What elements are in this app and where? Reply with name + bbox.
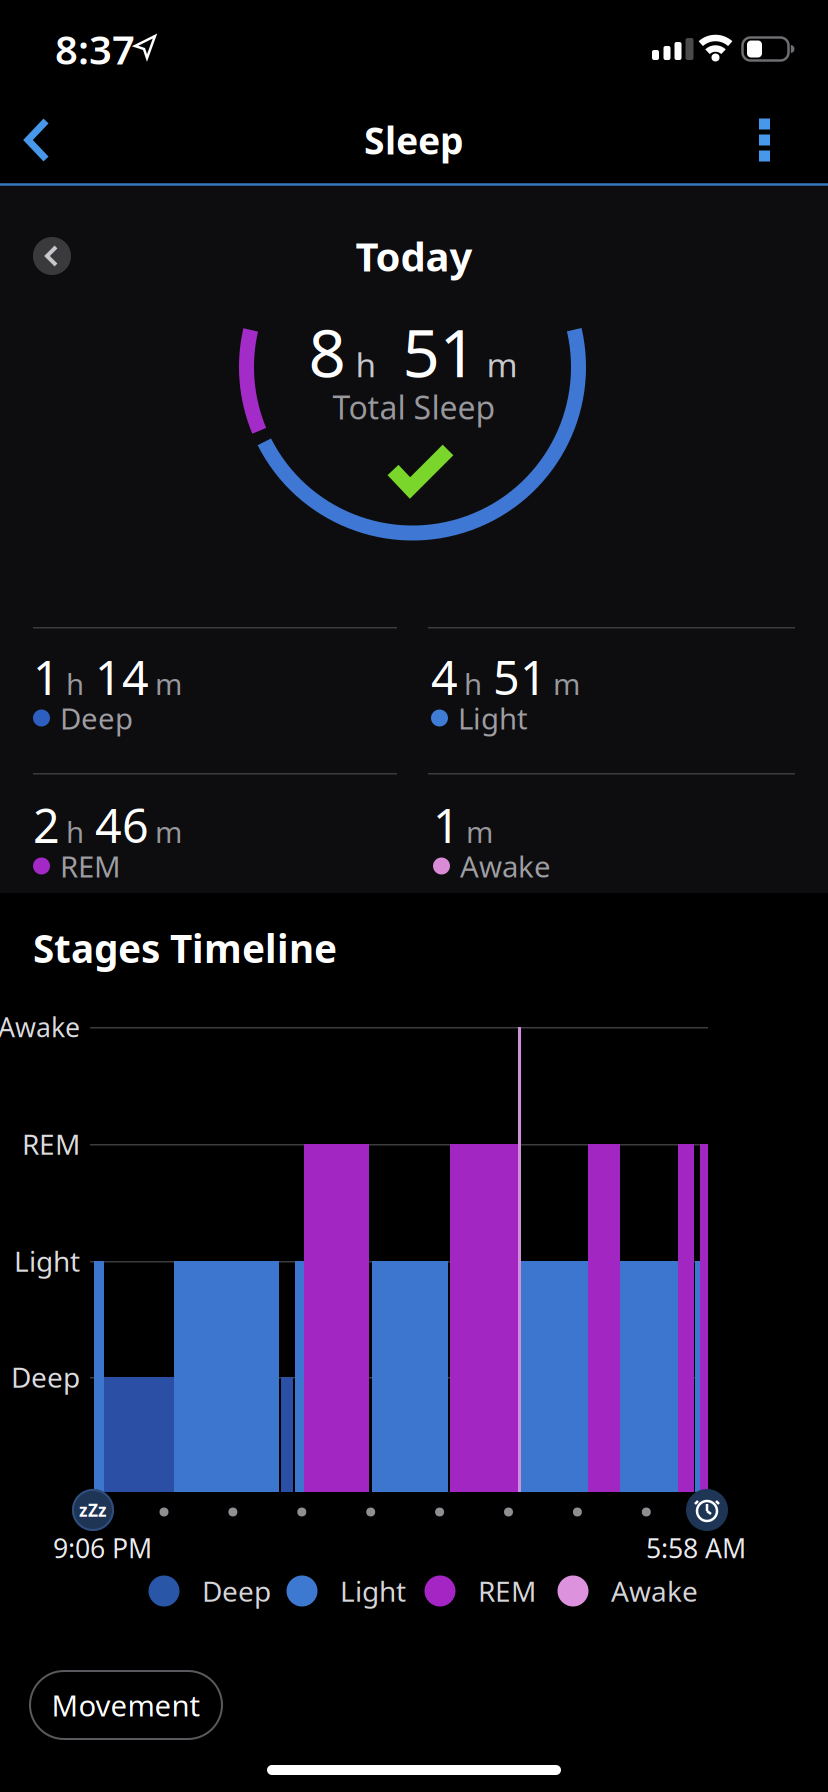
staticText: 1: [433, 794, 460, 856]
button[interactable]: [4, 96, 84, 184]
staticText: m: [466, 812, 493, 851]
staticText: Light: [340, 1572, 406, 1610]
staticText: 9:06 PM: [53, 1530, 152, 1566]
staticText: m: [155, 812, 182, 851]
staticText: 2: [33, 794, 60, 856]
staticText: h: [66, 664, 84, 703]
staticText: Awake: [460, 846, 551, 885]
staticText: Awake: [0, 1009, 80, 1045]
staticText: 8: [308, 309, 345, 395]
staticText: 51: [493, 646, 547, 708]
staticText: m: [155, 664, 182, 703]
staticText: Sleep: [364, 115, 464, 165]
button[interactable]: [728, 113, 800, 166]
staticText: 1: [33, 646, 60, 708]
staticText: Deep: [60, 698, 133, 737]
staticText: h: [464, 664, 482, 703]
staticText: Stages Timeline: [33, 922, 337, 974]
staticText: Today: [355, 229, 472, 282]
staticText: 46: [95, 794, 149, 856]
staticText: Total Sleep: [332, 386, 495, 428]
staticText: 5:58 AM: [646, 1530, 746, 1566]
staticText: REM: [60, 846, 121, 885]
staticText: Deep: [11, 1358, 80, 1396]
staticText: Movement: [51, 1685, 200, 1724]
staticText: Light: [458, 698, 528, 737]
staticText: Awake: [611, 1572, 698, 1610]
staticText: m: [553, 664, 580, 703]
staticText: h: [66, 812, 84, 851]
staticText: m: [486, 342, 517, 387]
staticText: REM: [478, 1572, 536, 1610]
button[interactable]: Movement: [30, 1671, 222, 1739]
staticText: 51: [402, 309, 476, 395]
staticText: h: [355, 342, 376, 387]
staticText: 8:37: [55, 22, 135, 75]
staticText: Deep: [202, 1572, 271, 1610]
staticText: zZz: [79, 1498, 107, 1521]
staticText: Light: [14, 1242, 80, 1280]
staticText: 4: [431, 646, 458, 708]
button[interactable]: [33, 237, 71, 275]
staticText: 14: [95, 646, 149, 708]
staticText: REM: [22, 1125, 80, 1163]
